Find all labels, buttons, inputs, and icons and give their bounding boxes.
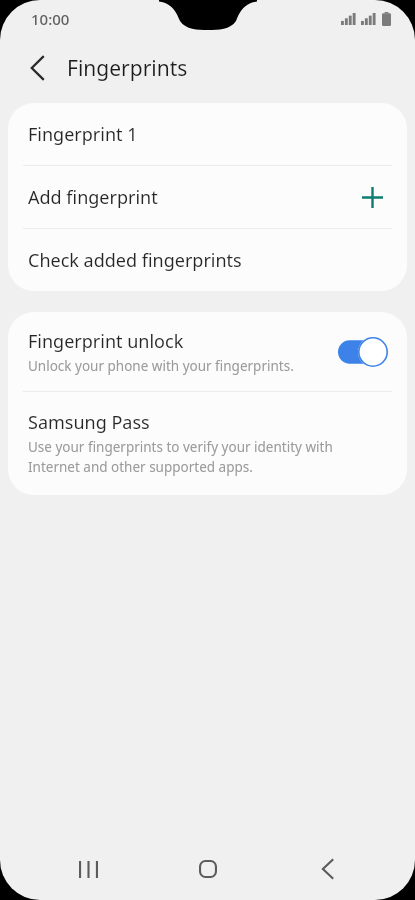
button[interactable]: Fingerprint 1 [8, 103, 407, 165]
staticText: Fingerprints [67, 54, 188, 83]
staticText: Fingerprint 1 [28, 122, 138, 147]
staticText: Unlock your phone with your fingerprints… [28, 357, 294, 375]
button[interactable]: Back [295, 838, 359, 900]
staticText: Check added fingerprints [28, 248, 242, 273]
button[interactable]: Fingerprint unlock [336, 335, 390, 369]
staticText: Fingerprint unlock [28, 329, 184, 354]
button[interactable]: Home [176, 838, 240, 900]
button[interactable]: Fingerprint unlock [8, 312, 407, 391]
button[interactable]: Add fingerprint [8, 166, 407, 228]
button[interactable]: Samsung Pass [8, 392, 407, 495]
button[interactable]: Back [17, 48, 57, 88]
staticText: Samsung Pass [28, 410, 150, 435]
staticText: Use your fingerprints to verify your ide… [28, 438, 383, 476]
staticText: Add fingerprint [28, 185, 158, 210]
staticText: 10:00 [31, 9, 70, 29]
button[interactable]: Check added fingerprints [8, 229, 407, 291]
button[interactable]: Recent apps [56, 838, 120, 900]
